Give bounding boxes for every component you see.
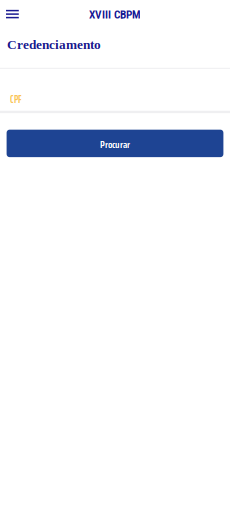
staticText: XVIII CBPM — [89, 8, 141, 21]
button[interactable]: Menu — [0, 4, 25, 24]
staticText: Credenciamento — [7, 37, 101, 52]
button[interactable]: Procurar — [0, 130, 230, 157]
button[interactable]: CPF — [0, 69, 230, 113]
staticText: CPF — [10, 91, 22, 108]
staticText: Procurar — [100, 137, 130, 152]
